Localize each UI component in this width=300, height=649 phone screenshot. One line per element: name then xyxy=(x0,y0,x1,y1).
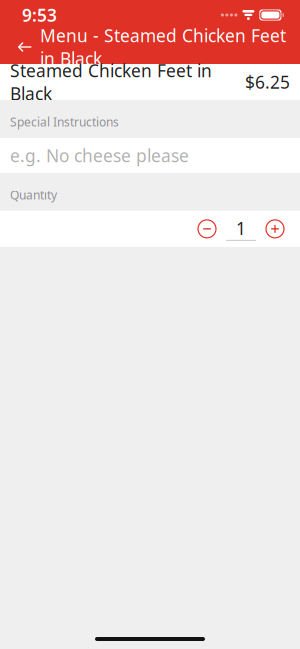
staticText: Special Instructions xyxy=(10,114,119,130)
staticText: Quantity xyxy=(10,187,57,203)
button[interactable]: e.g. No cheese please xyxy=(0,138,300,173)
staticText: e.g. No cheese please xyxy=(10,144,189,167)
button[interactable]: 1 xyxy=(220,217,262,241)
staticText: $6.25 xyxy=(245,70,290,93)
button[interactable]: Increase quantity xyxy=(262,216,288,242)
button[interactable]: Back xyxy=(10,30,40,64)
staticText: Menu - Steamed Chicken Feet in Black xyxy=(40,24,286,70)
staticText: 1 xyxy=(236,217,246,240)
button[interactable]: Decrease quantity xyxy=(194,216,220,242)
staticText: 9:53 xyxy=(22,3,57,26)
staticText: Steamed Chicken Feet in Black xyxy=(10,59,212,105)
